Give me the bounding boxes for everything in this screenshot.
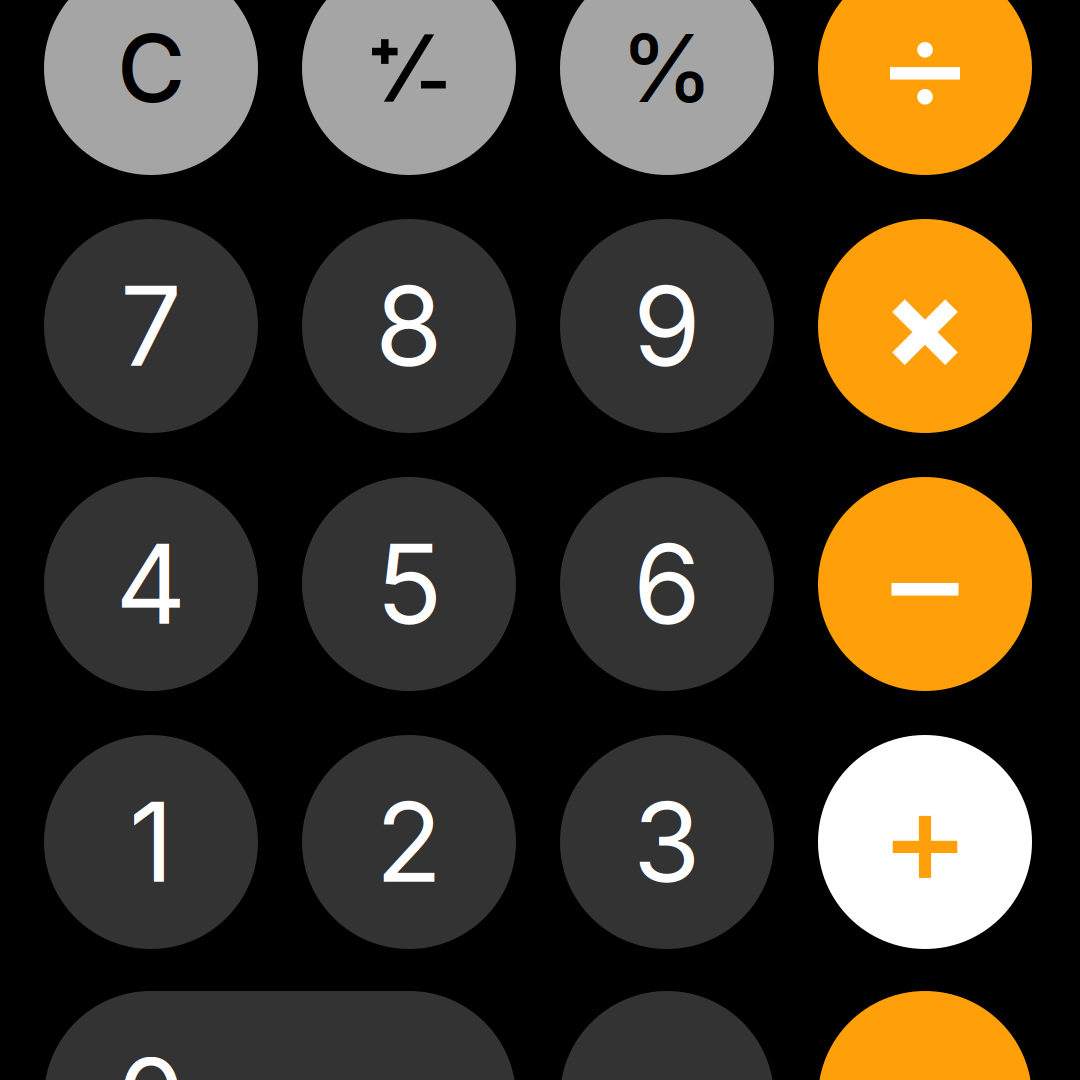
staticText: 9 — [633, 260, 701, 392]
staticText: 0 — [116, 1032, 185, 1080]
button[interactable]: Subtract — [818, 477, 1032, 691]
button[interactable]: 0 — [44, 991, 516, 1080]
button[interactable]: Toggle sign — [302, 0, 516, 175]
staticText: 7 — [120, 260, 182, 392]
button[interactable]: Multiply — [818, 219, 1032, 433]
button[interactable]: 8 — [302, 219, 516, 433]
staticText: C — [117, 11, 185, 124]
button[interactable]: Equals — [818, 991, 1032, 1080]
button[interactable]: 4 — [44, 477, 258, 691]
button[interactable]: 2 — [302, 735, 516, 949]
staticText: 2 — [375, 776, 442, 908]
staticText: 3 — [633, 776, 701, 908]
staticText: 6 — [633, 518, 701, 650]
button[interactable]: C — [44, 0, 258, 175]
button[interactable]: % — [560, 0, 774, 175]
button[interactable]: 6 — [560, 477, 774, 691]
button[interactable]: 1 — [44, 735, 258, 949]
staticText: % — [620, 11, 713, 124]
button[interactable]: 3 — [560, 735, 774, 949]
staticText: 1 — [129, 776, 173, 908]
button[interactable]: Divide — [818, 0, 1032, 175]
button[interactable]: . — [560, 991, 774, 1080]
staticText: 8 — [375, 260, 443, 392]
button[interactable]: 9 — [560, 219, 774, 433]
staticText: 4 — [115, 518, 186, 650]
button[interactable]: 5 — [302, 477, 516, 691]
button[interactable]: 7 — [44, 219, 258, 433]
staticText: 5 — [376, 518, 442, 650]
button[interactable]: Add — [818, 735, 1032, 949]
